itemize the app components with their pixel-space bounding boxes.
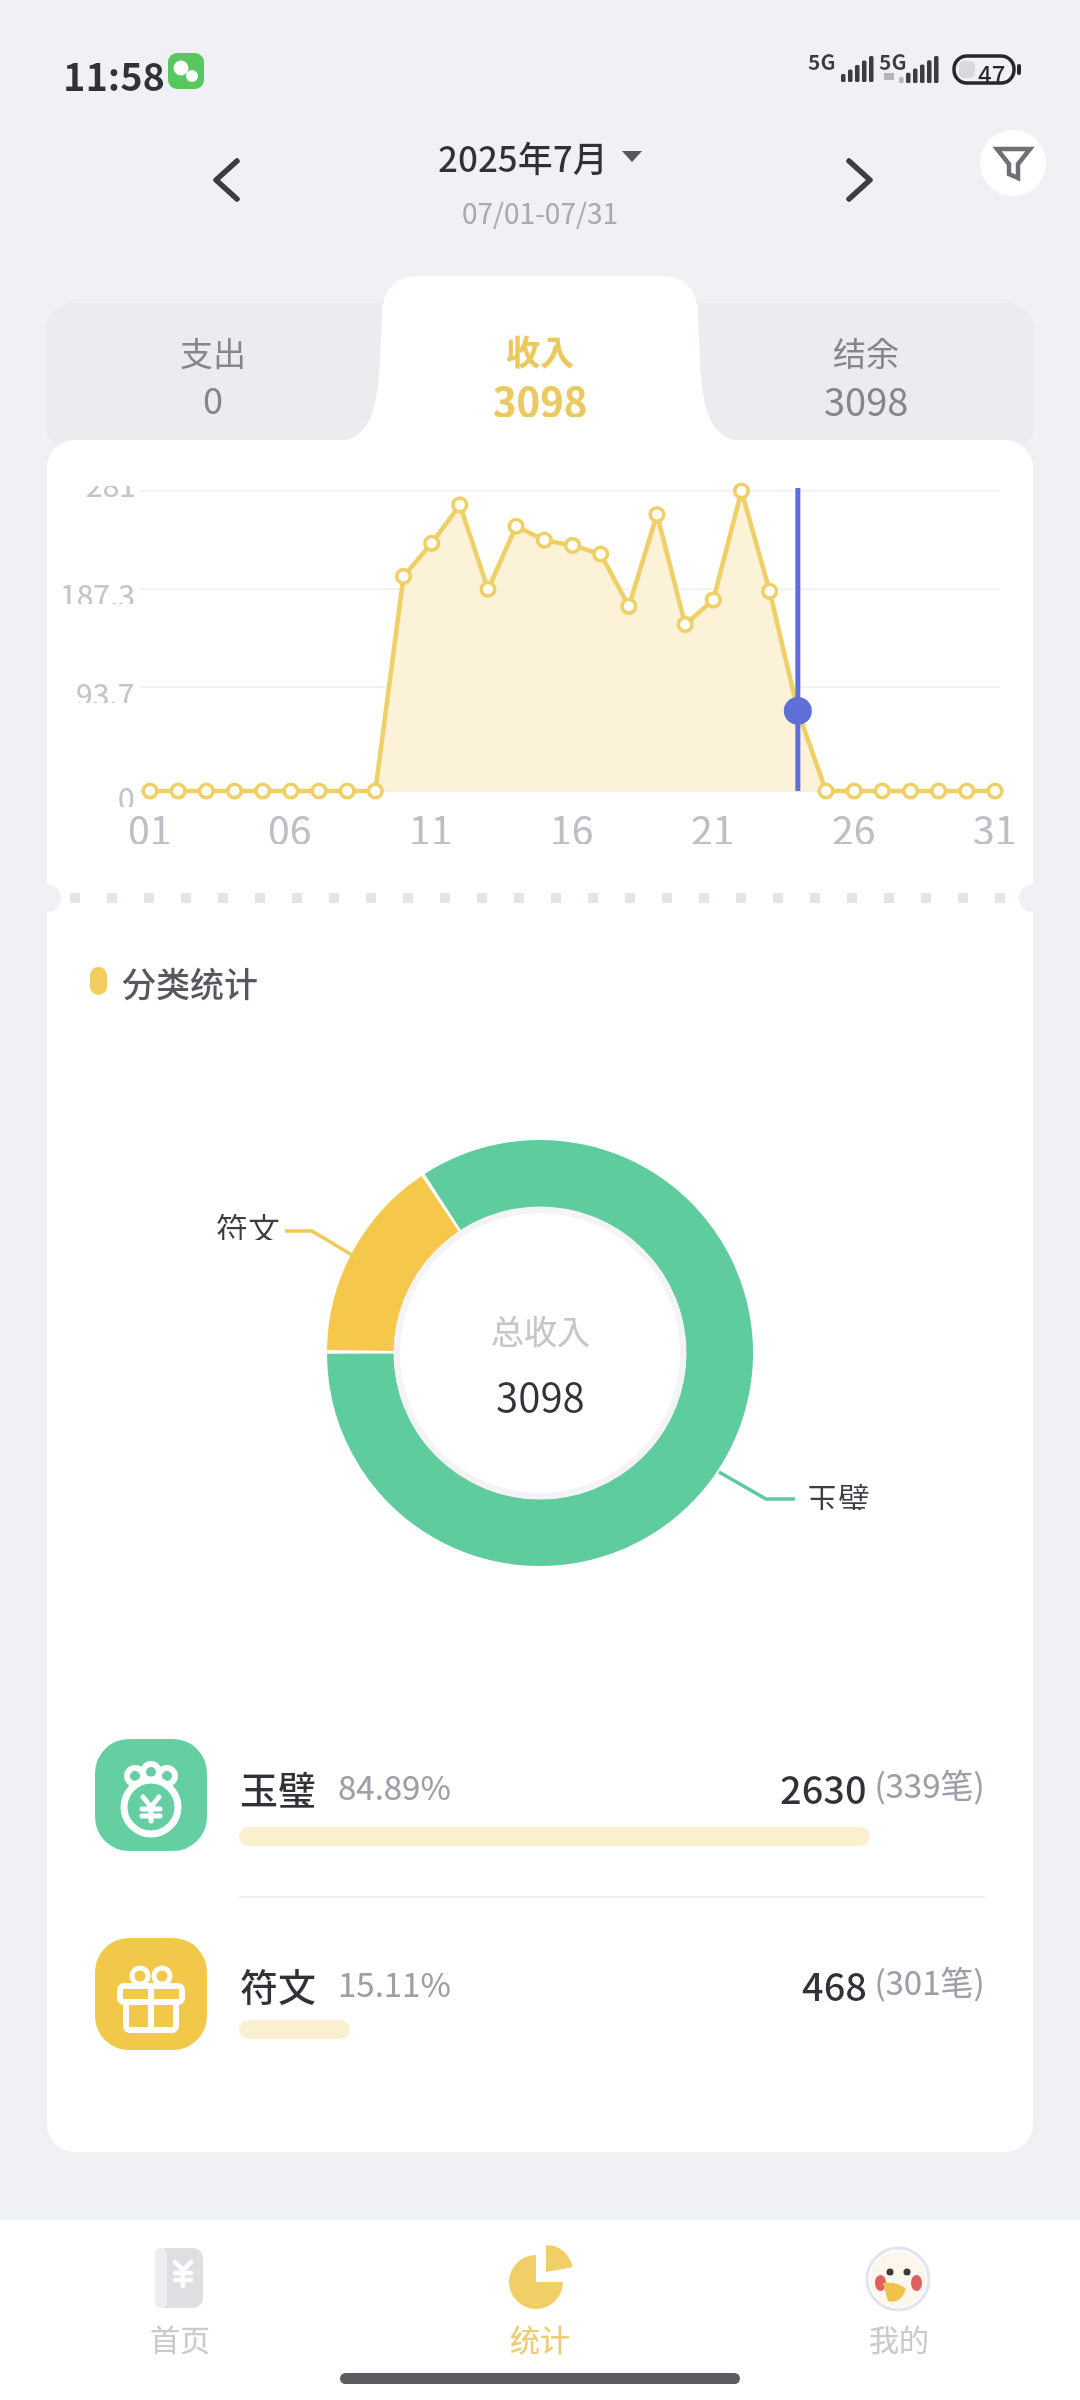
staticText: 符文	[240, 1957, 317, 2005]
button[interactable]	[810, 140, 900, 220]
staticText: 21	[691, 800, 735, 844]
staticText: 结余	[833, 328, 899, 372]
staticText: 我的	[869, 2316, 929, 2358]
staticText: (301笔)	[867, 1957, 985, 2005]
staticText: 3098	[824, 372, 909, 416]
staticText: 2630	[780, 1760, 867, 1808]
staticText: (339笔)	[867, 1760, 985, 1808]
staticText: 分类统计	[122, 958, 258, 1004]
staticText: 11	[409, 800, 453, 844]
button[interactable]	[720, 2220, 1080, 2370]
staticText: 3098	[493, 371, 588, 417]
staticText: 01	[128, 800, 172, 844]
button[interactable]	[0, 2220, 360, 2370]
staticText: 84.89%	[338, 1762, 451, 1806]
button[interactable]	[60, 1930, 1020, 2090]
staticText: 玉璧	[240, 1760, 317, 1808]
staticText: 2025年7月	[438, 131, 608, 182]
staticText: 3098	[496, 1366, 585, 1416]
staticText: 收入	[506, 326, 574, 372]
button[interactable]	[980, 130, 1046, 196]
staticText: 15.11%	[338, 1959, 451, 2003]
staticText: 468	[802, 1957, 867, 2005]
staticText: 总收入	[491, 1306, 590, 1350]
button[interactable]	[180, 140, 270, 220]
button[interactable]: 2025年7月	[0, 130, 1080, 182]
staticText: 玉璧	[806, 1474, 871, 1510]
staticText: 0	[203, 372, 223, 416]
button[interactable]	[390, 280, 690, 440]
staticText: 统计	[510, 2316, 570, 2358]
button[interactable]	[720, 300, 1020, 440]
staticText: 31	[973, 800, 1017, 844]
staticText: 26	[832, 800, 876, 844]
button[interactable]	[60, 300, 360, 440]
staticText: 16	[550, 800, 594, 844]
staticText: 187.3	[60, 572, 135, 604]
staticText: 07/01-07/31	[462, 192, 618, 232]
button[interactable]	[60, 1730, 1020, 1890]
staticText: 支出	[180, 328, 246, 372]
staticText: 5G	[808, 46, 836, 76]
staticText: 首页	[150, 2316, 210, 2358]
button[interactable]	[360, 2220, 720, 2370]
staticText: 11:58	[63, 47, 166, 91]
staticText: 47	[978, 56, 1006, 84]
staticText: 06	[268, 800, 312, 844]
staticText: 符文	[216, 1204, 281, 1240]
staticText: 5G	[879, 46, 907, 76]
staticText: 0	[118, 775, 135, 807]
staticText: 93.7	[76, 671, 135, 703]
